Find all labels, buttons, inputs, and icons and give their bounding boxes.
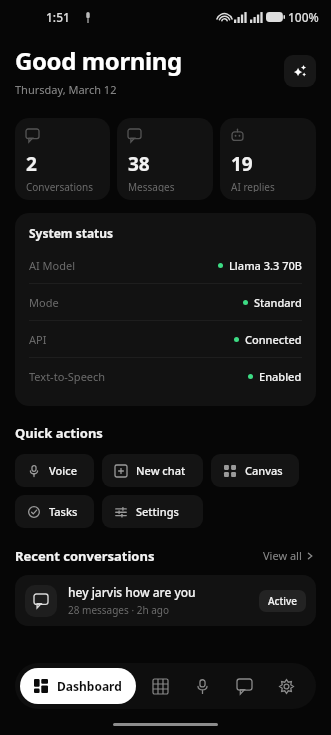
button[interactable]: hey jarvis how are you (15, 575, 316, 626)
staticText: System status (29, 225, 114, 241)
button[interactable]: Voice (15, 454, 94, 487)
staticText: Messages (128, 180, 175, 192)
staticText: Enabled (259, 369, 302, 384)
staticText: Settings (136, 504, 179, 519)
staticText: 100% (288, 9, 319, 25)
staticText: 38 (128, 151, 150, 177)
button[interactable]: Settings (267, 667, 305, 705)
staticText: Thursday, March 12 (15, 82, 117, 97)
button[interactable]: Voice (183, 667, 221, 705)
staticText: Recent conversations (15, 547, 155, 565)
staticText: Connected (245, 332, 302, 347)
staticText: View all (263, 548, 302, 563)
button[interactable]: Tasks (15, 495, 94, 528)
button[interactable]: 2 (15, 118, 110, 200)
button[interactable]: 38 (117, 118, 213, 200)
staticText: Quick actions (15, 424, 103, 442)
button[interactable]: AI Model (29, 247, 302, 283)
button[interactable]: API (29, 321, 302, 357)
staticText: Dashboard (57, 678, 122, 694)
button[interactable]: View all (261, 546, 316, 565)
staticText: hey jarvis how are you (68, 584, 196, 600)
staticText: API (29, 332, 47, 347)
staticText: AI replies (231, 180, 275, 192)
button[interactable]: Dashboard (20, 668, 136, 704)
button[interactable]: AI assistant (284, 55, 316, 87)
staticText: Good morning (15, 44, 182, 77)
staticText: Tasks (49, 504, 78, 519)
button[interactable]: Apps (141, 667, 179, 705)
staticText: 2 (26, 151, 37, 177)
staticText: Canvas (245, 463, 283, 478)
button[interactable]: Chat (225, 667, 263, 705)
staticText: Mode (29, 295, 59, 310)
staticText: Text-to-Speech (29, 369, 106, 384)
staticText: 28 messages · 2h ago (68, 603, 169, 617)
staticText: Llama 3.3 70B (229, 258, 302, 273)
staticText: Active (268, 594, 297, 608)
button[interactable]: Settings (102, 495, 203, 528)
button[interactable]: Mode (29, 284, 302, 320)
button[interactable]: Canvas (211, 454, 299, 487)
staticText: Conversations (26, 180, 94, 192)
staticText: AI Model (29, 258, 76, 273)
staticText: Standard (254, 295, 302, 310)
staticText: New chat (136, 463, 186, 478)
button[interactable]: 19 (220, 118, 316, 200)
staticText: 1:51 (46, 9, 70, 25)
staticText: 19 (231, 151, 253, 177)
staticText: Voice (49, 463, 77, 478)
button[interactable]: New chat (102, 454, 203, 487)
button[interactable]: Text-to-Speech (29, 358, 302, 394)
